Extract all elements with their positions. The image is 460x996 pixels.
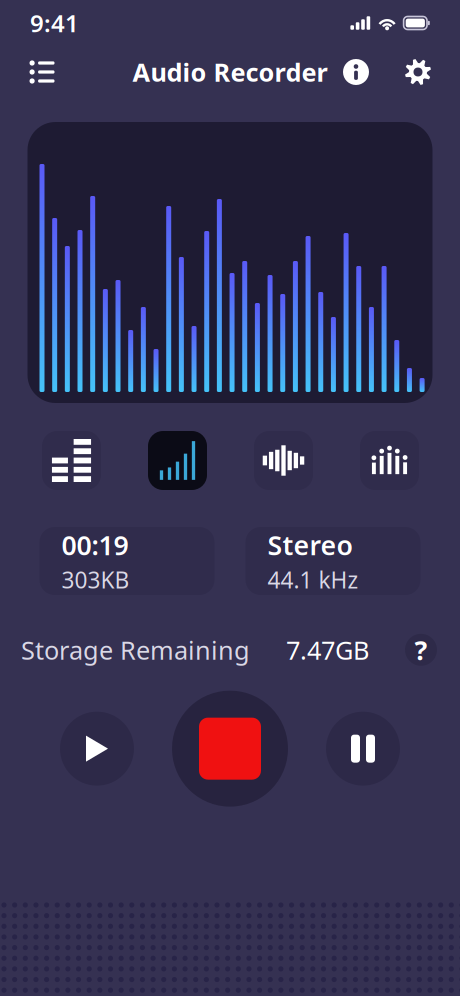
staticText: 9:41: [30, 7, 79, 39]
button[interactable]: Play: [60, 712, 134, 786]
staticText: 44.1 kHz: [267, 565, 358, 595]
staticText: 00:19: [61, 527, 128, 563]
staticText: Stereo: [267, 527, 352, 563]
button[interactable]: Waveform visualizer: [254, 431, 313, 490]
staticText: Storage Remaining: [21, 633, 250, 667]
staticText: 303KB: [61, 565, 129, 595]
button[interactable]: Recordings list: [20, 50, 64, 94]
button[interactable]: Bars visualizer: [42, 431, 101, 490]
staticText: ?: [414, 632, 427, 667]
staticText: 7.47GB: [286, 633, 369, 667]
button[interactable]: Help: [405, 634, 437, 666]
button[interactable]: Level visualizer: [148, 431, 207, 490]
staticText: Audio Recorder: [132, 55, 327, 89]
button[interactable]: Stop recording: [172, 691, 288, 807]
button[interactable]: Information: [336, 52, 376, 92]
button[interactable]: Peaks visualizer: [360, 431, 419, 490]
button[interactable]: Pause: [326, 712, 400, 786]
button[interactable]: Settings: [398, 52, 438, 92]
